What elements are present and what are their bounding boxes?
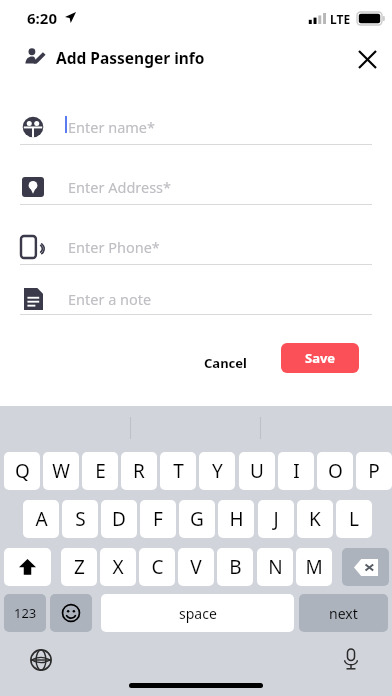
button[interactable]: N [257, 548, 293, 586]
button[interactable]: space [101, 594, 294, 632]
button[interactable] [50, 594, 92, 632]
staticText: P [368, 458, 380, 484]
staticText: I [293, 458, 300, 484]
button[interactable]: Z [61, 548, 97, 586]
button[interactable]: Save [281, 343, 359, 373]
button[interactable]: Change keyboard [24, 643, 58, 677]
staticText: Y [212, 458, 223, 484]
button[interactable]: Cancel [204, 344, 247, 382]
staticText: Enter name* [68, 117, 156, 137]
staticText: T [173, 458, 184, 484]
staticText: 6:20 [27, 8, 57, 28]
button[interactable]: Y [199, 452, 235, 490]
button[interactable]: L [336, 500, 372, 538]
staticText: W [52, 458, 70, 484]
staticText: E [95, 458, 106, 484]
staticText: O [328, 458, 343, 484]
staticText: N [268, 554, 283, 580]
staticText: U [250, 458, 264, 484]
button[interactable]: O [317, 452, 353, 490]
button[interactable]: Close [350, 42, 384, 76]
button[interactable]: next [299, 594, 388, 632]
button[interactable]: C [139, 548, 175, 586]
button[interactable]: D [101, 500, 137, 538]
staticText: Add Passenger info [56, 47, 205, 68]
staticText: Save [305, 349, 336, 367]
staticText: G [190, 506, 204, 532]
button[interactable]: H [218, 500, 254, 538]
button[interactable]: M [296, 548, 332, 586]
button[interactable]: X [100, 548, 136, 586]
button[interactable]: U [239, 452, 275, 490]
staticText: space [179, 604, 217, 623]
staticText: B [229, 554, 242, 580]
staticText: D [112, 506, 126, 532]
button[interactable]: V [178, 548, 214, 586]
staticText: K [309, 506, 321, 532]
staticText: next [329, 604, 358, 623]
button[interactable] [342, 548, 389, 586]
button[interactable]: E [82, 452, 118, 490]
button[interactable]: B [217, 548, 253, 586]
staticText: M [305, 554, 323, 580]
staticText: LTE [330, 11, 351, 27]
button[interactable]: R [121, 452, 157, 490]
button[interactable]: Enter Phone* [0, 230, 392, 266]
staticText: F [153, 506, 163, 532]
button[interactable]: T [160, 452, 196, 490]
button[interactable]: F [140, 500, 176, 538]
staticText: S [75, 506, 86, 532]
button[interactable]: Enter a note [0, 282, 392, 316]
button[interactable]: Q [4, 452, 40, 490]
staticText: Enter Phone* [68, 237, 160, 257]
staticText: Enter a note [68, 289, 152, 309]
button[interactable]: Enter name* [0, 110, 392, 146]
staticText: J [273, 506, 279, 532]
staticText: Z [74, 554, 85, 580]
staticText: L [349, 506, 359, 532]
button[interactable]: 123 [4, 594, 46, 632]
button[interactable]: G [179, 500, 215, 538]
staticText: A [35, 506, 48, 532]
staticText: Enter Address* [68, 177, 172, 197]
button[interactable]: A [23, 500, 59, 538]
button[interactable]: I [278, 452, 314, 490]
button[interactable]: P [356, 452, 392, 490]
staticText: H [229, 506, 244, 532]
staticText: Cancel [204, 354, 247, 372]
button[interactable]: K [297, 500, 333, 538]
staticText: R [133, 458, 145, 484]
button[interactable]: J [258, 500, 294, 538]
button[interactable]: S [62, 500, 98, 538]
staticText: C [151, 554, 164, 580]
button[interactable]: Voice input [334, 643, 368, 677]
staticText: V [190, 554, 202, 580]
button[interactable]: W [43, 452, 79, 490]
staticText: 123 [14, 604, 37, 622]
button[interactable] [4, 548, 51, 586]
button[interactable]: Enter Address* [0, 170, 392, 206]
staticText: Q [15, 458, 30, 484]
staticText: X [112, 554, 124, 580]
